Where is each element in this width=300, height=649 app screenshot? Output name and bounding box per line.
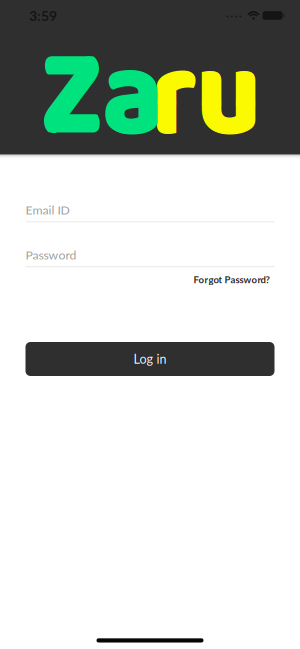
button[interactable]: Email ID: [25, 202, 274, 221]
staticText: Za: [28, 0, 164, 196]
staticText: Forgot Password?: [193, 274, 269, 285]
staticText: Password: [25, 247, 76, 262]
staticText: Email ID: [25, 202, 69, 217]
staticText: 3:59: [29, 7, 57, 24]
staticText: ru: [151, 0, 272, 196]
button[interactable]: Log in: [25, 342, 274, 376]
staticText: ru: [152, 0, 273, 197]
button[interactable]: Password: [25, 247, 274, 266]
staticText: Za: [29, 0, 165, 197]
staticText: Log in: [133, 351, 166, 366]
button[interactable]: Forgot Password?: [193, 274, 269, 285]
